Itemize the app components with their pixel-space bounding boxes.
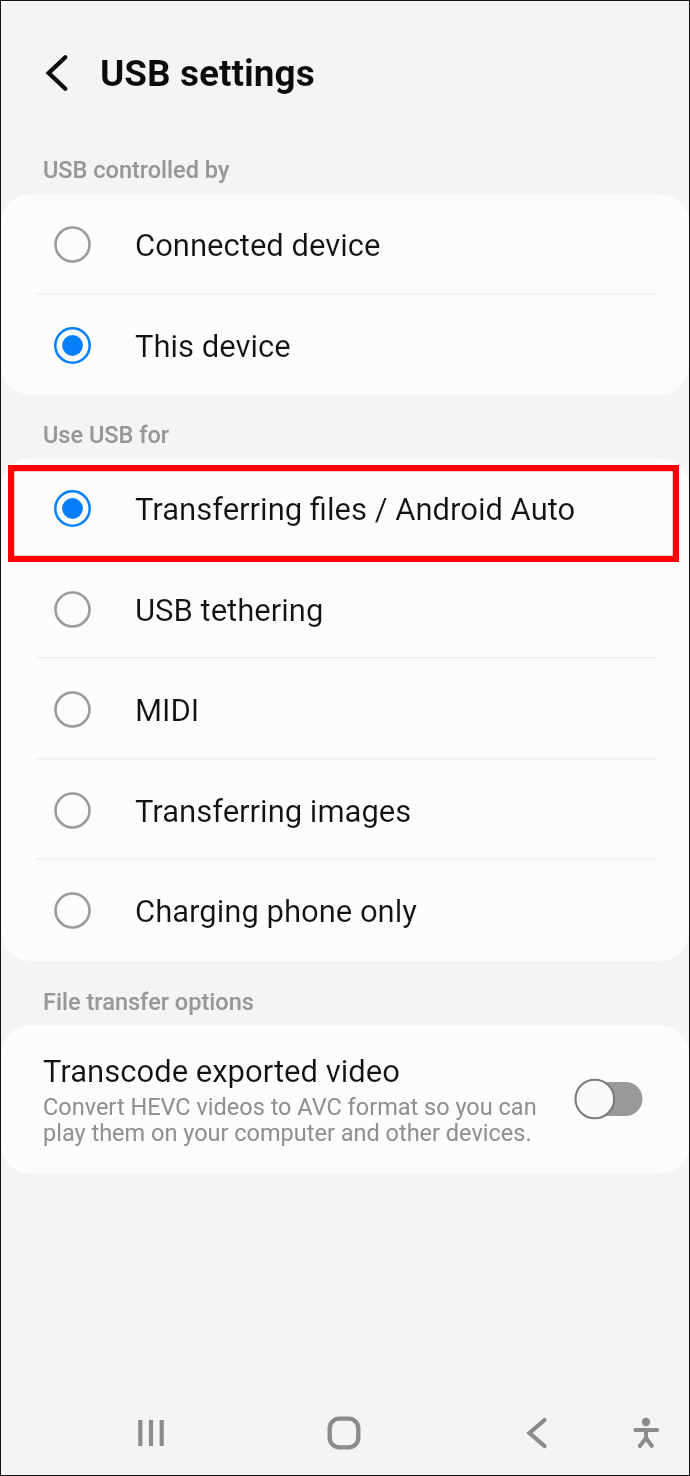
staticText: Transferring images [135, 793, 412, 829]
button[interactable]: Accessibility [598, 1385, 690, 1476]
button[interactable]: Navigate up [21, 37, 93, 109]
button[interactable] [1, 1025, 557, 1174]
staticText: Connected device [135, 227, 381, 263]
button[interactable]: Transferring files / Android Auto [1, 458, 689, 559]
button[interactable]: Transferring images [1, 760, 689, 861]
staticText: This device [135, 328, 291, 364]
button[interactable]: Transcode exported video [561, 1059, 657, 1139]
staticText: USB settings [100, 52, 315, 95]
button[interactable]: Recents [103, 1385, 199, 1476]
button[interactable]: This device [1, 295, 689, 396]
staticText: MIDI [135, 692, 200, 728]
staticText: Convert HEVC videos to AVC format so you… [43, 1093, 573, 1147]
staticText: File transfer options [43, 988, 254, 1016]
staticText: Use USB for [43, 421, 170, 449]
button[interactable]: MIDI [1, 659, 689, 760]
staticText: Charging phone only [135, 893, 417, 929]
button[interactable]: USB tethering [1, 559, 689, 660]
staticText: Transferring files / Android Auto [135, 491, 576, 527]
staticText: Transcode exported video [43, 1053, 400, 1089]
staticText: USB controlled by [43, 156, 230, 184]
button[interactable]: Home [296, 1385, 392, 1476]
button[interactable]: Connected device [1, 194, 689, 295]
button[interactable]: Charging phone only [1, 860, 689, 961]
staticText: USB tethering [135, 592, 324, 628]
button[interactable]: Back [489, 1385, 585, 1476]
